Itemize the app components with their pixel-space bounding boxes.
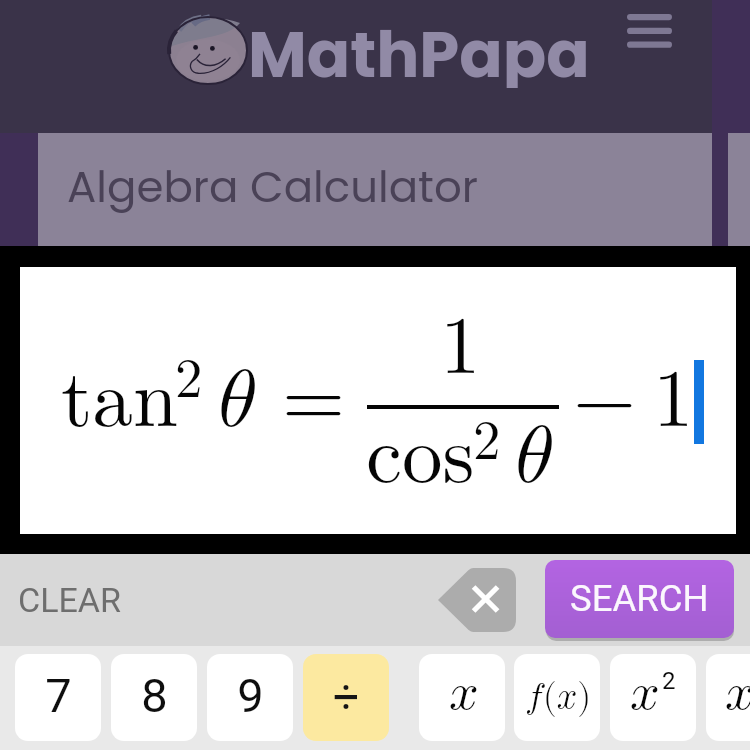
staticText: 7 bbox=[45, 668, 72, 723]
button[interactable]: Divide bbox=[303, 654, 389, 741]
staticText: 1 bbox=[653, 361, 694, 442]
staticText: 1 bbox=[440, 308, 481, 389]
button[interactable]: SEARCH bbox=[545, 560, 734, 638]
button[interactable]: Backspace bbox=[437, 568, 516, 632]
staticText: 2 bbox=[175, 353, 203, 408]
button[interactable]: 9 bbox=[207, 654, 293, 741]
button[interactable]: Menu bbox=[620, 5, 678, 57]
button[interactable]: f of x bbox=[514, 654, 600, 741]
staticText: 𝑥 bbox=[725, 667, 750, 719]
staticText: tan bbox=[61, 361, 179, 442]
staticText: MathPapa bbox=[248, 10, 590, 88]
staticText: Algebra Calculator bbox=[67, 156, 478, 217]
staticText: 2 bbox=[662, 667, 676, 695]
button[interactable]: CLEAR bbox=[0, 570, 143, 630]
staticText: 9 bbox=[237, 668, 264, 723]
button[interactable]: 8 bbox=[111, 654, 197, 741]
staticText: ÷ bbox=[333, 670, 360, 724]
staticText: 𝑓(𝑥) bbox=[525, 679, 592, 715]
staticText: 𝜃 bbox=[515, 417, 553, 498]
staticText: 𝑥 bbox=[449, 667, 479, 719]
staticText: − bbox=[573, 361, 637, 442]
staticText: = bbox=[282, 361, 346, 442]
button[interactable]: x y bbox=[706, 654, 750, 741]
button[interactable]: Algebra Calculator bbox=[38, 133, 712, 246]
button[interactable]: tan bbox=[20, 267, 736, 534]
staticText: cos bbox=[366, 417, 475, 498]
button[interactable]: 7 bbox=[15, 654, 101, 741]
staticText: 𝜃 bbox=[218, 361, 256, 442]
staticText: 𝑥 bbox=[630, 667, 660, 719]
staticText: 2 bbox=[473, 415, 501, 470]
staticText: SEARCH bbox=[570, 577, 709, 620]
staticText: 8 bbox=[141, 668, 168, 723]
button[interactable]: x squared bbox=[610, 654, 696, 741]
button[interactable]: x bbox=[419, 654, 505, 741]
